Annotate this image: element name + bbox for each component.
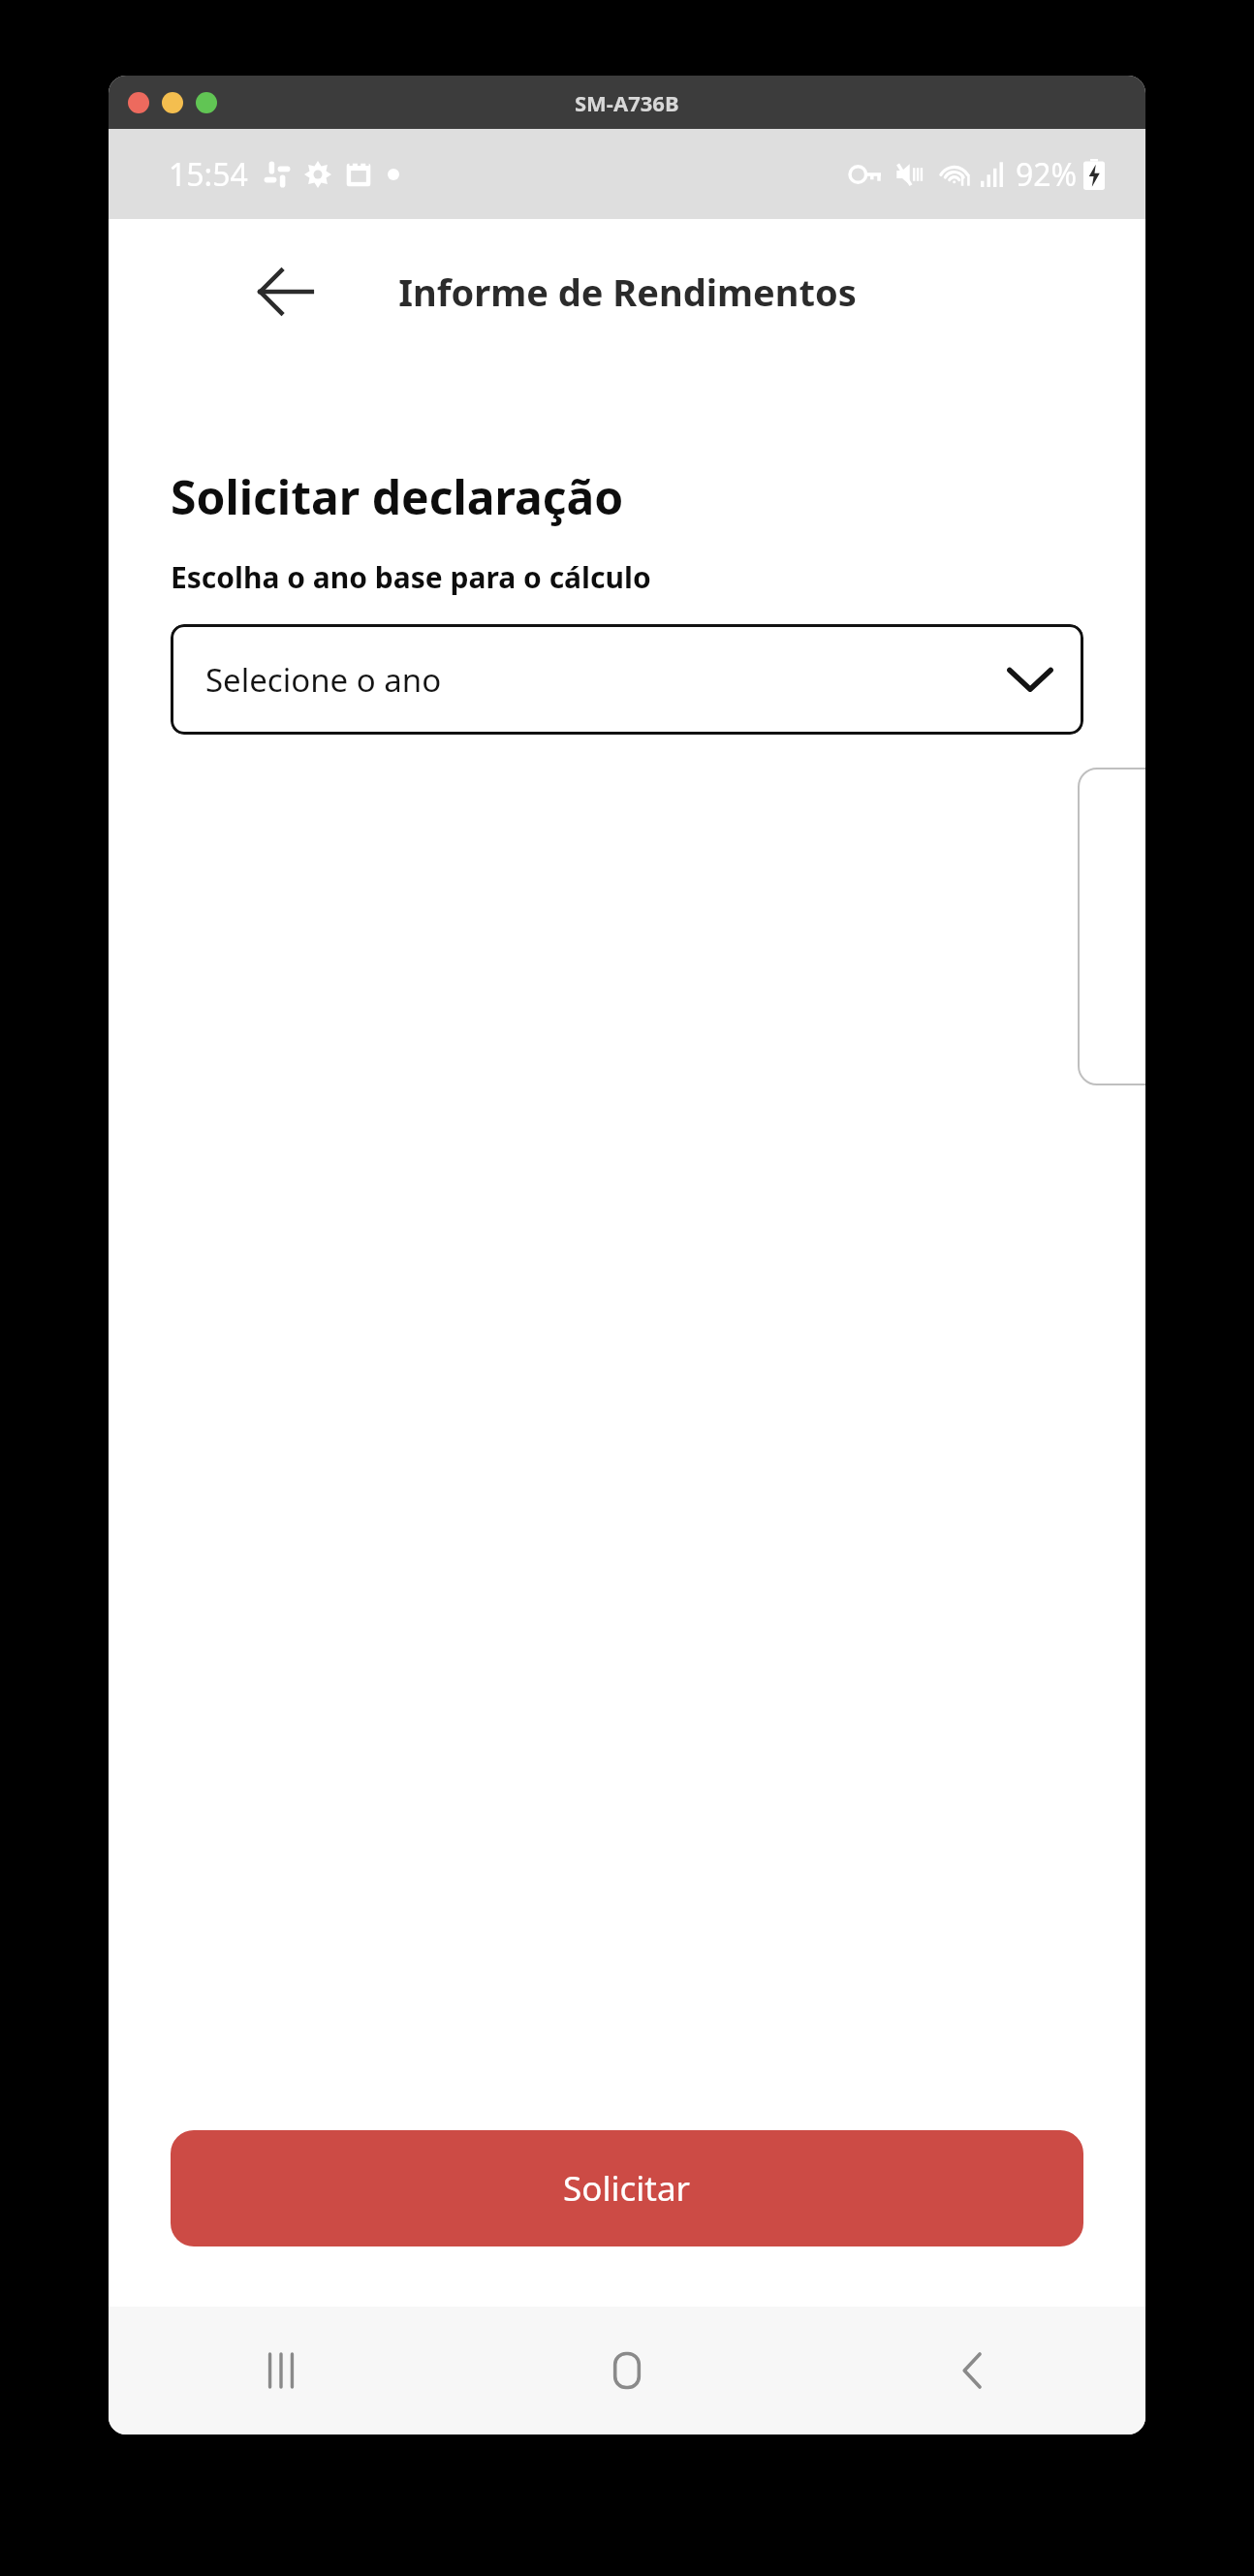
- staticText: Solicitar declaração: [171, 465, 624, 528]
- button[interactable]: Início: [454, 2307, 799, 2435]
- button[interactable]: Voltar: [244, 251, 326, 332]
- button[interactable]: Solicitar: [171, 2130, 1083, 2246]
- staticText: SM-A736B: [575, 88, 679, 117]
- button[interactable]: Selecione o ano: [171, 624, 1083, 735]
- staticText: Solicitar: [563, 2165, 691, 2212]
- staticText: 15:54: [169, 153, 248, 196]
- staticText: Informe de Rendimentos: [398, 267, 857, 317]
- staticText: 92%: [1016, 153, 1078, 196]
- button[interactable]: Recentes: [109, 2307, 454, 2435]
- button[interactable]: Voltar: [799, 2307, 1145, 2435]
- button[interactable]: Minimize: [162, 92, 183, 113]
- staticText: Selecione o ano: [205, 658, 442, 702]
- button[interactable]: Zoom: [196, 92, 217, 113]
- button[interactable]: Close: [128, 92, 149, 113]
- staticText: Escolha o ano base para o cálculo: [171, 557, 651, 597]
